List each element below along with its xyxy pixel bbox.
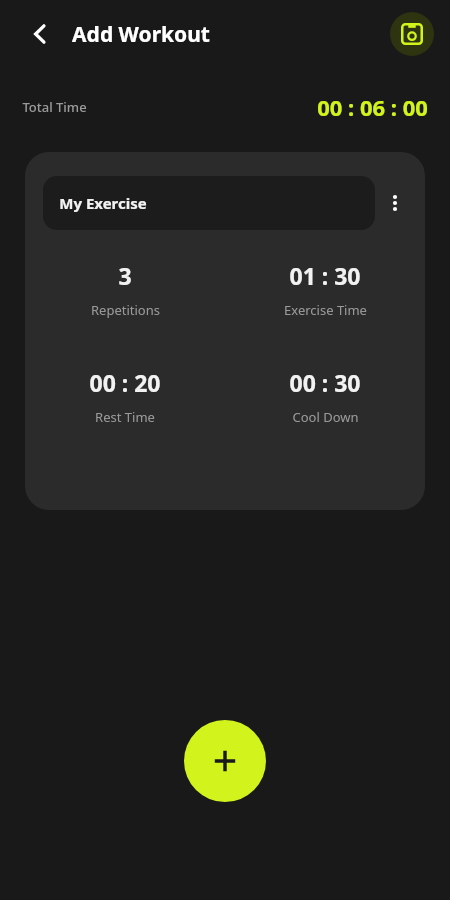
button[interactable]: 00 : 20	[25, 367, 225, 426]
staticText: Add Workout	[72, 20, 210, 49]
staticText: 00 : 06 : 00	[317, 92, 428, 122]
button[interactable]: More options	[375, 183, 415, 223]
staticText: My Exercise	[59, 193, 147, 213]
staticText: 3	[118, 260, 132, 291]
staticText: 01 : 30	[289, 260, 361, 291]
button[interactable]: Save workout	[390, 12, 434, 56]
button[interactable]: Add exercise	[184, 720, 266, 802]
staticText: Rest Time	[95, 408, 155, 426]
button[interactable]: My Exercise	[25, 152, 425, 510]
staticText: 00 : 30	[289, 367, 361, 398]
staticText: 00 : 20	[89, 367, 161, 398]
button[interactable]: 01 : 30	[225, 260, 425, 319]
staticText: Cool Down	[292, 408, 359, 426]
staticText: Total Time	[22, 98, 87, 116]
button[interactable]: My Exercise	[43, 176, 375, 230]
button[interactable]: 3	[25, 260, 225, 319]
staticText: Exercise Time	[284, 301, 367, 319]
staticText: Repetitions	[91, 301, 160, 319]
button[interactable]: Back	[20, 14, 60, 54]
button[interactable]: 00 : 30	[225, 367, 425, 426]
